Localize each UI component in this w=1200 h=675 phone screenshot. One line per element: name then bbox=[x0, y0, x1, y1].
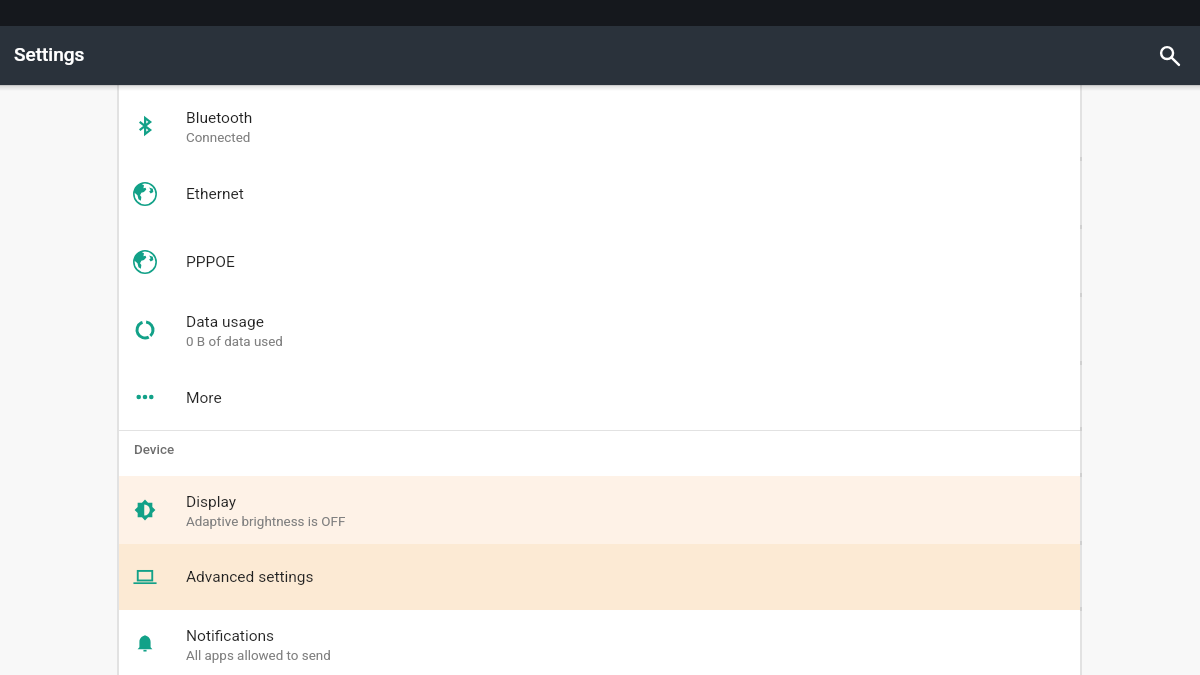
staticText: Connected bbox=[186, 130, 251, 146]
staticText: Display bbox=[186, 493, 237, 511]
staticText: Ethernet bbox=[186, 185, 244, 203]
staticText: All apps allowed to send bbox=[186, 648, 331, 664]
staticText: Adaptive brightness is OFF bbox=[186, 514, 346, 530]
button[interactable]: More bbox=[119, 364, 1080, 431]
button[interactable]: Advanced settings bbox=[119, 544, 1080, 610]
button[interactable]: Search bbox=[1148, 34, 1191, 77]
staticText: Data usage bbox=[186, 313, 264, 331]
button[interactable]: PPPOE bbox=[119, 228, 1080, 296]
staticText: 0 B of data used bbox=[186, 334, 283, 350]
button[interactable]: Bluetooth bbox=[119, 92, 1080, 160]
staticText: Settings bbox=[14, 43, 85, 65]
staticText: More bbox=[186, 389, 222, 407]
staticText: Device bbox=[134, 442, 175, 458]
button[interactable]: Ethernet bbox=[119, 160, 1080, 228]
button[interactable]: Notifications bbox=[119, 610, 1080, 675]
button[interactable]: Display bbox=[119, 476, 1080, 544]
staticText: Notifications bbox=[186, 627, 275, 645]
staticText: Bluetooth bbox=[186, 109, 253, 127]
staticText: Advanced settings bbox=[186, 568, 314, 586]
staticText: PPPOE bbox=[186, 253, 235, 271]
button[interactable]: Data usage bbox=[119, 296, 1080, 364]
